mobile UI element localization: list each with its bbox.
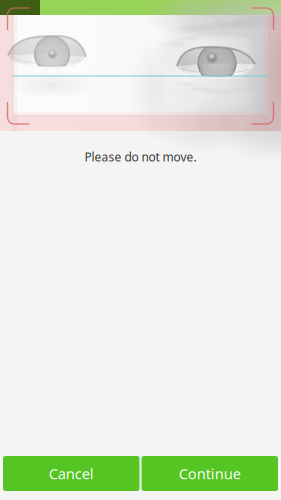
staticText: Cancel xyxy=(49,464,94,483)
button[interactable]: Continue xyxy=(141,456,278,491)
staticText: Please do not move. xyxy=(84,149,196,165)
button[interactable]: Cancel xyxy=(3,456,139,491)
staticText: Continue xyxy=(179,464,241,483)
